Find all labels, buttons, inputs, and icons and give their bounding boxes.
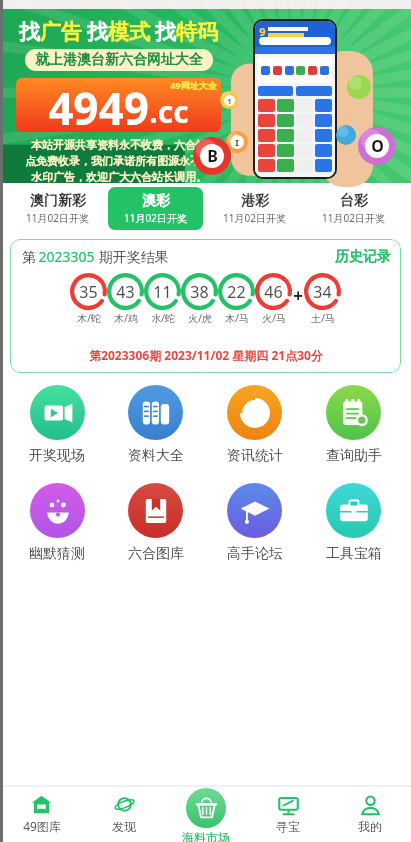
button[interactable]: 资讯统计 (205, 385, 304, 465)
button[interactable]: 六合图库 (106, 483, 205, 563)
staticText: 查询助手 (326, 447, 382, 465)
staticText: 第2023306期 2023/11/02 星期四 21点30分 (89, 347, 323, 363)
staticText: 11月02日开奖 (124, 211, 187, 225)
staticText: 期开奖结果 (95, 247, 169, 266)
button[interactable]: 幽默猜测 (8, 483, 106, 563)
staticText: 4949 (48, 78, 149, 132)
staticText: 火/马 (262, 311, 286, 325)
staticText: 历史记录 (335, 248, 391, 266)
staticText: 找 (19, 19, 40, 45)
staticText: 土/马 (311, 311, 335, 325)
staticText: 海料市场 (182, 830, 230, 842)
staticText: + (293, 284, 303, 307)
staticText: 11 (153, 281, 172, 303)
staticText: 木/马 (225, 311, 249, 325)
button[interactable]: 港彩 (206, 187, 302, 230)
staticText: 台彩 (340, 192, 368, 210)
staticText: 38 (190, 281, 209, 303)
button[interactable]: 澳彩 (108, 810, 201, 839)
staticText: 木/蛇 (77, 311, 101, 325)
staticText: .cc (149, 91, 189, 132)
staticText: 发现 (112, 819, 136, 834)
button[interactable]: 查询助手 (304, 385, 403, 465)
button[interactable]: 工具宝箱 (304, 483, 403, 563)
staticText: 11月02日开奖 (223, 211, 286, 225)
staticText: 开奖现场 (29, 447, 85, 465)
staticText: 水/蛇 (151, 311, 175, 325)
button[interactable]: 发现 (83, 786, 165, 842)
staticText: 22 (227, 281, 246, 303)
staticText: O (371, 135, 384, 157)
staticText: 幽默猜测 (29, 545, 85, 563)
staticText: 资讯统计 (227, 447, 283, 465)
button[interactable]: 49图库 (0, 786, 83, 842)
button[interactable]: 海料市场 (165, 786, 247, 842)
button[interactable]: 寻宝 (247, 786, 329, 842)
staticText: 高手论坛 (227, 545, 283, 563)
button[interactable]: 历史记录 (335, 248, 391, 266)
staticText: 特码 (176, 19, 218, 45)
button[interactable]: 资料大全 (106, 385, 205, 465)
button[interactable]: 澳门新彩 (10, 187, 105, 230)
staticText: 澳门新彩 (30, 192, 86, 210)
staticText: 港彩 (252, 817, 278, 833)
staticText: 工具宝箱 (326, 545, 382, 563)
staticText: 1 (227, 96, 232, 106)
staticText: 木/鸡 (114, 311, 138, 325)
staticText: 49图库 (23, 818, 61, 834)
staticText: 找 (87, 19, 108, 45)
staticText: 就上港澳台新六合网址大全 (35, 51, 203, 69)
staticText: 我的 (358, 819, 382, 834)
button[interactable]: 港彩 (208, 810, 302, 839)
staticText: 寻宝 (276, 819, 300, 834)
staticText: 34 (313, 281, 332, 303)
button[interactable]: 台彩 (309, 810, 403, 839)
staticText: 六合图库 (128, 545, 184, 563)
staticText: 第 (20, 247, 38, 266)
button[interactable]: 开奖现场 (8, 385, 106, 465)
staticText: 35 (79, 281, 98, 303)
staticText: B (207, 145, 218, 167)
staticText: 11月02日开奖 (26, 211, 89, 225)
staticText: 11月02日开奖 (322, 211, 385, 225)
staticText: 9 (259, 24, 266, 39)
staticText: 澳彩 (142, 192, 170, 210)
staticText: 点免费收录，我们承诺所有图源永不上 (25, 154, 212, 168)
staticText: 找 (155, 19, 176, 45)
staticText: 港彩 (241, 192, 269, 210)
staticText: 火/虎 (188, 311, 212, 325)
staticText: 资料大全 (128, 447, 184, 465)
staticText: 49网址大全 (170, 79, 217, 91)
staticText: 模式 (108, 19, 150, 45)
button[interactable]: 我的 (329, 786, 411, 842)
button[interactable]: 高手论坛 (205, 483, 304, 563)
button[interactable]: 澳彩 (108, 187, 203, 230)
staticText: 台彩 (353, 817, 379, 833)
button[interactable]: 找 (0, 0, 411, 183)
button[interactable]: 台彩 (305, 187, 401, 230)
staticText: 水印广告，欢迎广大六合站长调用。 (31, 170, 207, 183)
staticText: 本站开源共享资料永不收费，六合站 (31, 138, 207, 152)
staticText: 46 (264, 281, 283, 303)
staticText: 广告 (40, 19, 82, 45)
button[interactable]: 澳门新彩 (8, 810, 101, 839)
staticText: 43 (116, 281, 135, 303)
staticText: 澳门新彩 (39, 817, 91, 833)
staticText: I (235, 136, 239, 149)
staticText: 2023305 (38, 247, 95, 266)
button[interactable]: 第 (10, 239, 401, 373)
